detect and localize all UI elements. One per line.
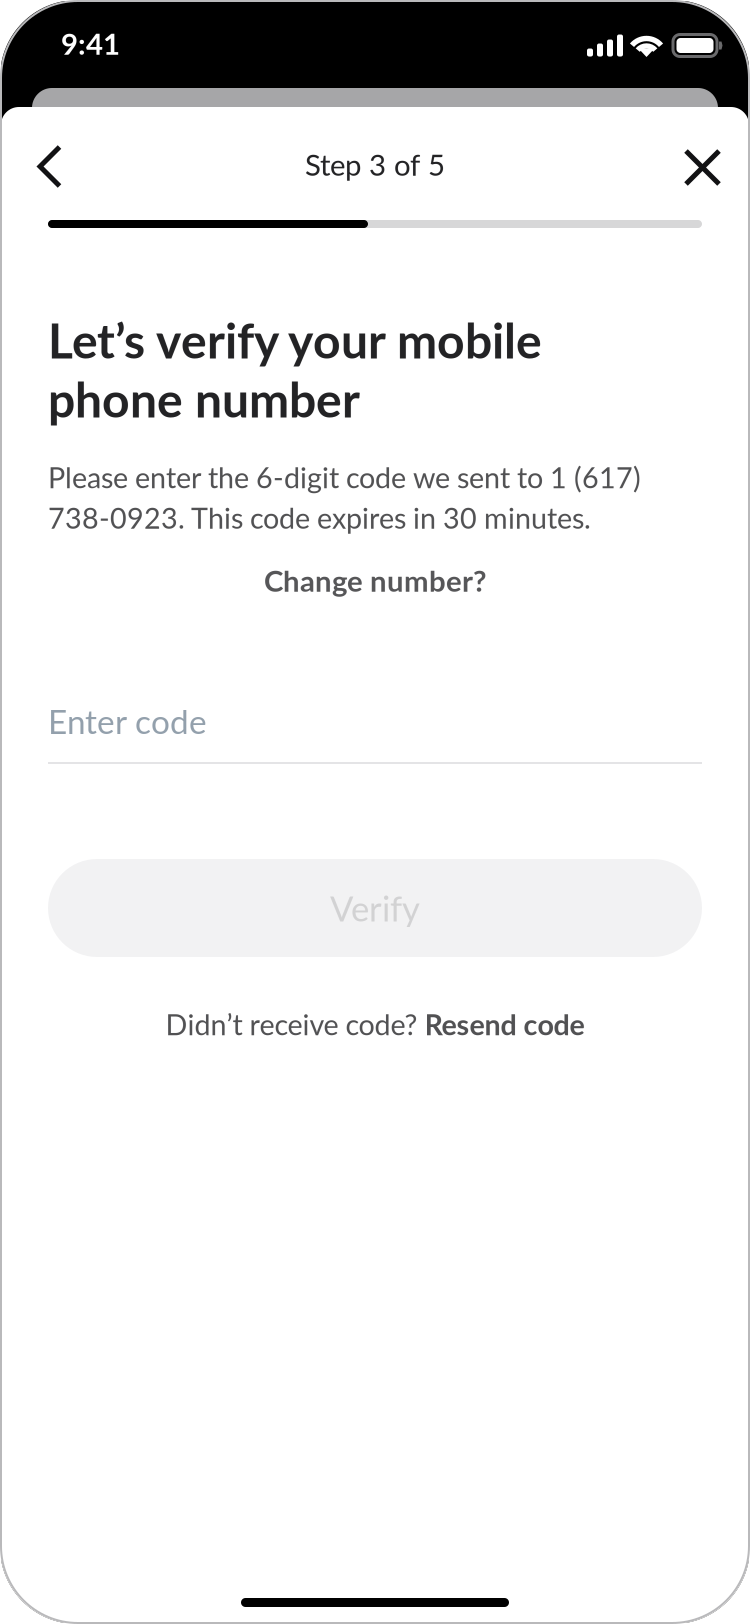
staticText: 738-0923. This code expires in 30 minute… xyxy=(48,500,591,535)
staticText: Resend code xyxy=(424,1007,584,1041)
staticText: Step 3 of 5 xyxy=(305,147,445,182)
button[interactable]: Close xyxy=(662,129,749,200)
staticText: 9:41 xyxy=(61,26,120,61)
button[interactable]: Verify xyxy=(48,859,702,957)
button[interactable]: Change number? xyxy=(48,551,702,610)
staticText: Didn’t receive code? xyxy=(165,1007,424,1041)
staticText: phone number xyxy=(48,370,360,428)
staticText: Enter code xyxy=(48,701,207,741)
staticText: Change number? xyxy=(264,563,486,598)
button[interactable]: Didn’t receive code? xyxy=(48,995,702,1053)
staticText: Verify xyxy=(330,887,420,929)
staticText: Please enter the 6-digit code we sent to… xyxy=(48,460,641,494)
button[interactable]: Back xyxy=(1,127,83,202)
staticText: Let’s verify your mobile xyxy=(48,311,542,369)
